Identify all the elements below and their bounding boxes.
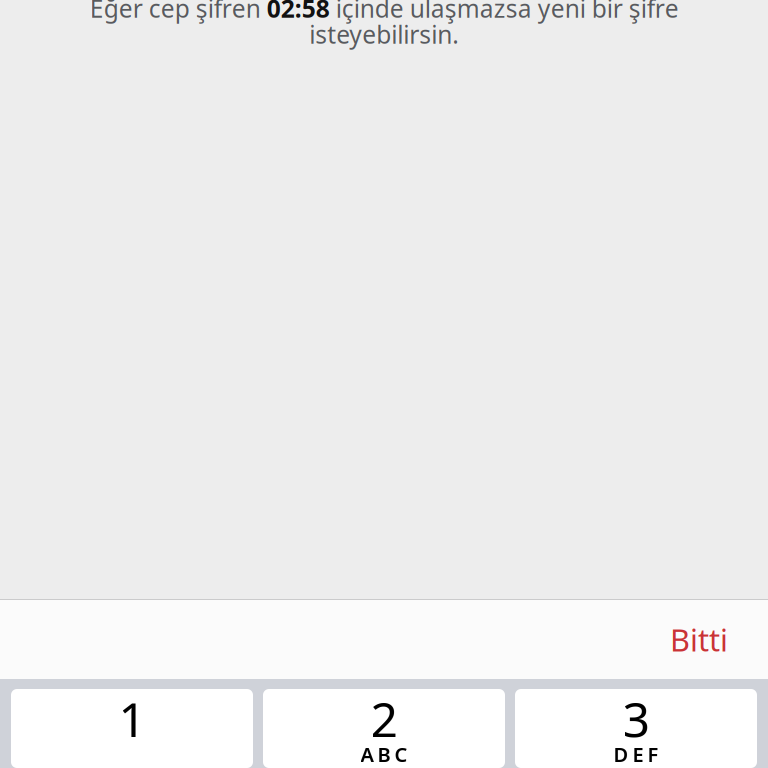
button[interactable]: 3 <box>515 689 757 768</box>
staticText: DEF <box>613 741 658 768</box>
staticText: 3 <box>622 687 649 751</box>
staticText: ABC <box>360 741 407 768</box>
button[interactable]: Bitti <box>670 607 768 672</box>
button[interactable]: 1 <box>11 689 253 768</box>
button[interactable]: 2 <box>263 689 505 768</box>
staticText: Eğer cep şifren 02:58 içinde ulaşmazsa y… <box>89 0 678 25</box>
staticText: isteyebilirsin. <box>309 18 459 51</box>
staticText: Bitti <box>670 619 728 660</box>
staticText: 2 <box>370 687 397 751</box>
staticText: 1 <box>118 687 145 751</box>
